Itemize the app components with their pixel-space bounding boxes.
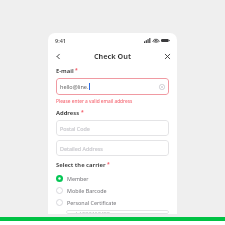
staticText: Address <box>56 109 80 117</box>
button[interactable]: Personal Certificate <box>56 196 169 208</box>
staticText: * <box>75 67 78 74</box>
staticText: 9:41 <box>55 37 66 44</box>
button[interactable]: ex) A523413455 <box>66 210 169 214</box>
staticText: ex) A523413455 <box>70 210 110 214</box>
staticText: Member <box>67 175 89 182</box>
button[interactable]: Detailed Address <box>56 140 169 156</box>
staticText: * <box>107 161 110 168</box>
staticText: Check Out <box>94 51 132 61</box>
staticText: E-mail <box>56 67 74 75</box>
staticText: Select the carrier <box>56 161 106 169</box>
button[interactable]: Mobile Barcode <box>56 184 169 196</box>
button[interactable]: Close <box>161 50 173 62</box>
staticText: Please enter a valid email address <box>56 98 133 105</box>
button[interactable]: Postal Code <box>56 120 169 136</box>
button[interactable]: Back <box>52 50 64 62</box>
other: Clear <box>159 84 165 90</box>
staticText: Mobile Barcode <box>67 187 107 194</box>
staticText: Personal Certificate <box>67 199 117 206</box>
staticText: hello@line. <box>60 83 89 90</box>
staticText: Postal Code <box>60 125 90 132</box>
staticText: * <box>81 109 84 116</box>
button[interactable]: Member <box>56 172 169 184</box>
button[interactable]: hello@line. <box>56 78 169 95</box>
staticText: Detailed Address <box>60 145 103 152</box>
